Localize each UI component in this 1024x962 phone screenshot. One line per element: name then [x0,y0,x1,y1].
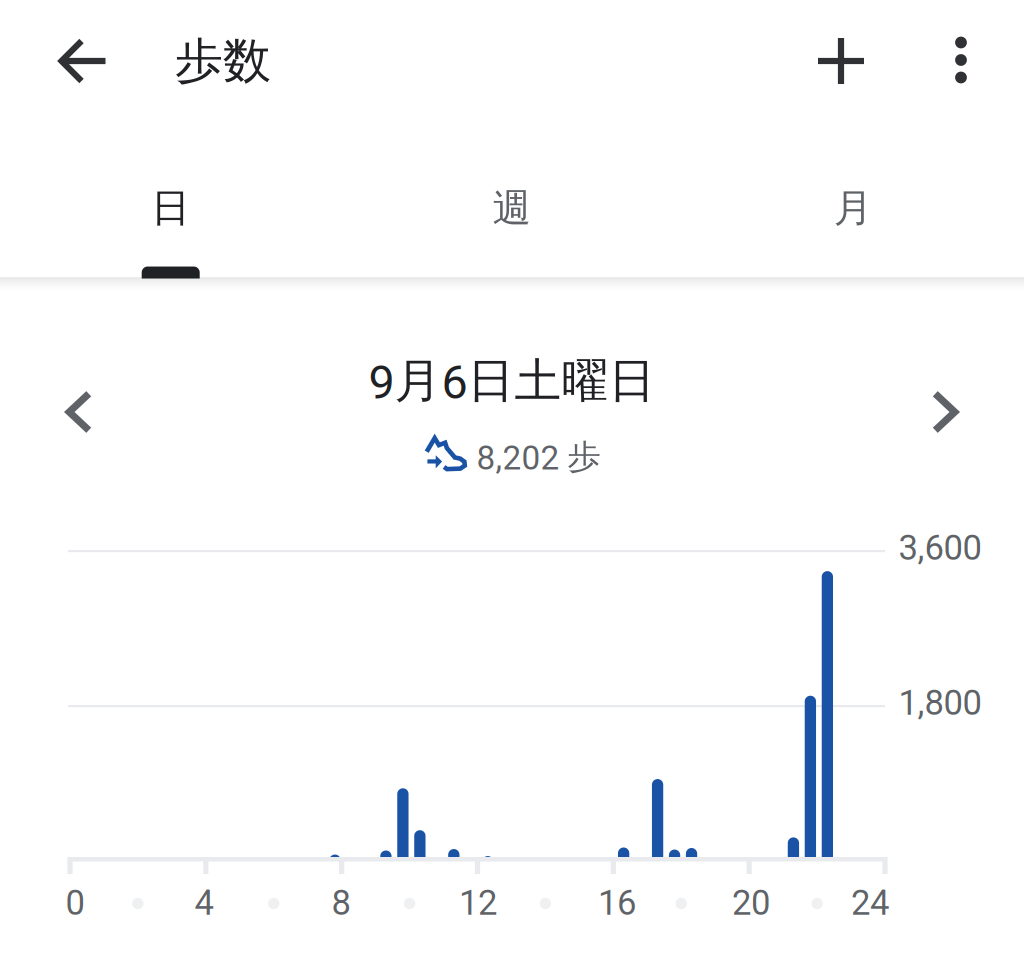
staticText: 8 [331,883,350,923]
button[interactable]: More options [906,0,1016,120]
button[interactable]: Previous day [24,357,134,467]
button[interactable]: Add [781,1,901,121]
staticText: 16 [598,883,636,923]
staticText: 3,600 [898,528,981,568]
staticText: 週 [492,184,531,232]
staticText: 歩数 [175,31,271,91]
button[interactable]: 週 [341,120,683,277]
button[interactable]: Back [23,1,143,121]
staticText: 20 [732,883,770,923]
staticText: 24 [851,883,889,923]
staticText: 0 [65,883,84,923]
staticText: 1,800 [898,683,981,723]
staticText: 12 [459,883,497,923]
staticText: 9月6日土曜日 [368,352,655,410]
staticText: 4 [194,883,213,923]
button[interactable]: Next day [890,357,1000,467]
button[interactable]: 日 [0,120,341,277]
button[interactable]: 月 [683,120,1024,277]
staticText: 月 [834,184,873,232]
staticText: 8,202 歩 [476,436,600,478]
staticText: 日 [151,184,190,232]
